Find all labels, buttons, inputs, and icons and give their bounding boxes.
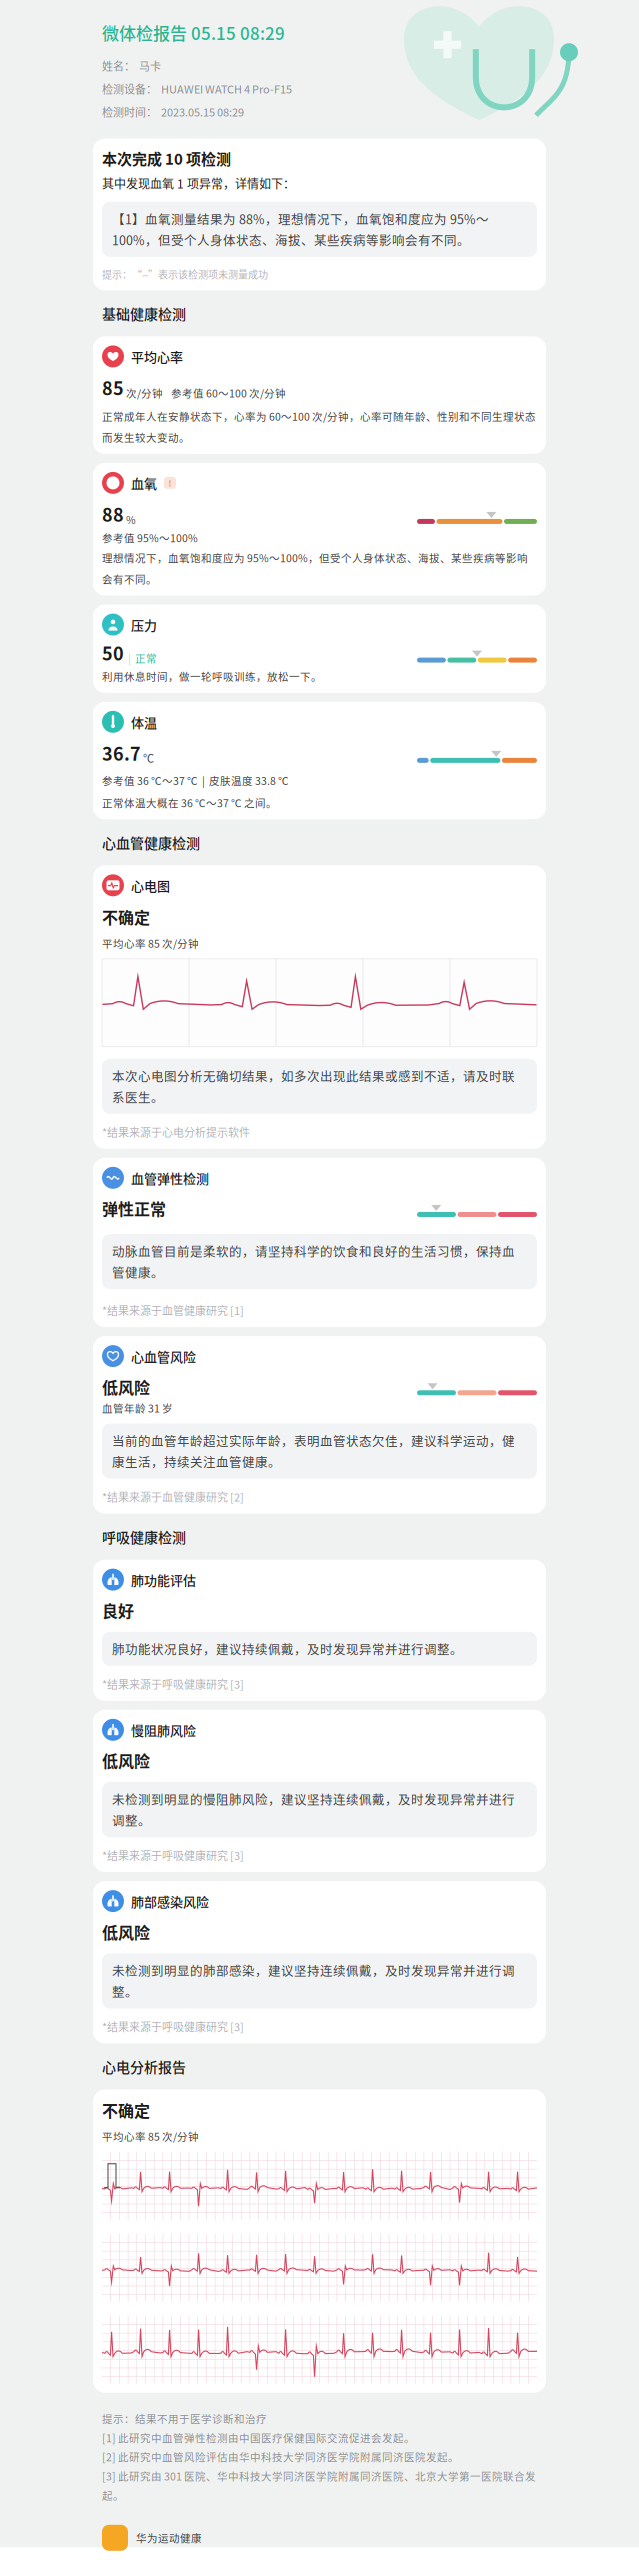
staticText: 提示：“--”表示该检测项未测量成功: [102, 267, 268, 281]
staticText: 心电分析报告: [102, 2056, 186, 2076]
staticText: 参考值 60～100 次/分钟: [163, 385, 286, 400]
staticText: 压力: [131, 615, 157, 634]
staticText: 未检测到明显的慢阻肺风险，建议坚持连续佩戴，及时发现异常并进行调整。: [112, 1790, 515, 1829]
staticText: 50: [102, 640, 124, 666]
staticText: 正常: [135, 650, 157, 666]
staticText: 肺功能状况良好，建议持续佩戴，及时发现异常并进行调整。: [112, 1640, 463, 1658]
staticText: %: [124, 512, 136, 527]
staticText: 参考值 95%～100%: [102, 530, 198, 545]
staticText: 弹性正常: [102, 1197, 166, 1220]
staticText: *结果来源于血管健康研究 [1]: [102, 1302, 244, 1318]
staticText: 检测设备： HUAWEI WATCH 4 Pro-F15: [102, 81, 292, 97]
staticText: 【1】血氧测量结果为 88%，理想情况下，血氧饱和度应为 95%～100%，但受…: [112, 210, 489, 249]
staticText: 动脉血管目前是柔软的，请坚持科学的饮食和良好的生活习惯，保持血管健康。: [112, 1242, 515, 1281]
staticText: *结果来源于血管健康研究 [2]: [102, 1489, 244, 1505]
staticText: !: [168, 477, 171, 489]
staticText: 心血管风险: [131, 1347, 196, 1365]
staticText: 平均心率 85 次/分钟: [102, 2129, 199, 2144]
staticText: 心电图: [131, 876, 170, 895]
staticText: 体温: [131, 712, 157, 731]
staticText: 85: [102, 374, 124, 400]
staticText: 36.7: [102, 740, 141, 766]
staticText: 当前的血管年龄超过实际年龄，表明血管状态欠佳，建议科学运动，健康生活，持续关注血…: [112, 1431, 515, 1471]
staticText: *结果来源于呼吸健康研究 [3]: [102, 1676, 244, 1692]
staticText: 肺部感染风险: [131, 1892, 209, 1910]
staticText: [2] 此研究中血管风险评估由华中科技大学同济医学院附属同济医院发起。: [102, 2449, 459, 2464]
staticText: 低风险: [102, 1920, 150, 1943]
staticText: 利用休息时间，做一轮呼吸训练，放松一下。: [102, 669, 322, 684]
staticText: 正常体温大概在 36 ℃～37 ℃ 之间。: [102, 795, 277, 810]
staticText: 不确定: [102, 2098, 150, 2122]
staticText: 理想情况下，血氧饱和度应为 95%～100%，但受个人身体状态、海拔、某些疾病等…: [102, 550, 528, 587]
staticText: 血管年龄 31 岁: [102, 1400, 173, 1415]
staticText: 提示：结果不用于医学诊断和治疗: [102, 2411, 267, 2426]
staticText: 正常成年人在安静状态下，心率为 60～100 次/分钟，心率可随年龄、性别和不同…: [102, 408, 536, 445]
staticText: 未检测到明显的肺部感染，建议坚持连续佩戴，及时发现异常并进行调整。: [112, 1961, 515, 2000]
staticText: 微体检报告 05.15 08:29: [102, 20, 285, 45]
staticText: 本次完成 10 项检测: [102, 148, 231, 169]
staticText: 本次心电图分析无确切结果，如多次出现此结果或感到不适，请及时联系医生。: [112, 1067, 515, 1106]
staticText: [1] 此研究中血管弹性检测由中国医疗保健国际交流促进会发起。: [102, 2430, 415, 2445]
staticText: *结果来源于呼吸健康研究 [3]: [102, 1847, 244, 1863]
staticText: 血氧: [131, 473, 157, 492]
staticText: 肺功能评估: [131, 1570, 196, 1589]
staticText: ℃: [141, 750, 154, 766]
staticText: *结果来源于心电分析提示软件: [102, 1124, 250, 1140]
staticText: 姓名： 马卡: [102, 58, 161, 74]
staticText: 不确定: [102, 905, 150, 928]
staticText: 其中发现血氧 1 项异常，详情如下：: [102, 175, 295, 192]
staticText: |: [124, 650, 135, 666]
staticText: 慢阻肺风险: [131, 1720, 196, 1739]
staticText: 低风险: [102, 1749, 150, 1772]
staticText: [3] 此研究由 301 医院、华中科技大学同济医学院附属同济医院、北京大学第一…: [102, 2468, 536, 2503]
staticText: 呼吸健康检测: [102, 1526, 186, 1547]
staticText: 心血管健康检测: [102, 832, 200, 852]
staticText: 基础健康检测: [102, 303, 186, 324]
staticText: 检测时间： 2023.05.15 08:29: [102, 104, 244, 120]
staticText: 低风险: [102, 1375, 150, 1398]
staticText: 参考值 36 ℃～37 ℃ | 皮肤温度 33.8 ℃: [102, 773, 289, 788]
staticText: *结果来源于呼吸健康研究 [3]: [102, 2018, 244, 2034]
staticText: 平均心率: [131, 347, 183, 366]
staticText: 平均心率 85 次/分钟: [102, 935, 199, 951]
staticText: 血管弹性检测: [131, 1168, 209, 1187]
staticText: 华为运动健康: [136, 2530, 202, 2545]
staticText: 次/分钟: [124, 385, 163, 400]
staticText: 88: [102, 501, 124, 527]
staticText: 良好: [102, 1599, 134, 1622]
